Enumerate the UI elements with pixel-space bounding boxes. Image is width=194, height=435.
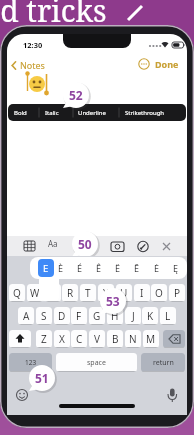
staticText: P [174,286,181,300]
button[interactable]: N [125,330,141,348]
staticText: Aa [48,238,58,249]
staticText: O [155,286,163,300]
button[interactable]: Ē [128,258,146,277]
button[interactable]: Y [98,284,114,302]
staticText: 50 [78,236,92,252]
button[interactable]: 123 [9,353,52,372]
staticText: Z [41,332,47,346]
staticText: 123 [25,358,37,367]
button[interactable]: X [54,330,70,348]
button[interactable]: Ë [109,258,127,277]
button[interactable]: Done [155,58,179,70]
button[interactable]: 53 [97,285,129,317]
button[interactable]: Underline [73,104,118,121]
staticText: B [112,332,119,346]
button[interactable]: Ê [90,258,108,277]
staticText: Done [155,58,179,70]
button[interactable]: C [71,330,87,348]
staticText: Underline [78,109,106,117]
staticText: H [111,309,119,323]
staticText: 53 [106,293,120,309]
button[interactable]: Z [36,330,52,348]
staticText: Ė [154,262,160,274]
staticText: Strikethrough [125,109,165,117]
staticText: Bold [14,109,27,117]
button[interactable]: D [54,307,70,325]
staticText: C [76,332,83,346]
button[interactable]: S [36,307,52,325]
button[interactable]: O [151,284,167,302]
staticText: M [146,332,156,346]
staticText: É [77,262,83,274]
button[interactable]: H [107,307,123,325]
button[interactable]: K [142,307,158,325]
staticText: G [93,309,101,323]
button[interactable]: J [125,307,141,325]
staticText: 52 [69,87,83,103]
staticText: I [140,286,144,300]
button[interactable]: B [107,330,123,348]
staticText: N [129,332,137,346]
staticText: S [41,309,47,323]
button[interactable]: P [169,284,185,302]
button[interactable]: R [62,284,78,302]
staticText: J [132,309,135,323]
staticText: V [94,332,100,346]
button[interactable]: 51 [26,362,58,394]
staticText: D [58,309,66,323]
button[interactable]: 50 [69,228,101,260]
staticText: 12:30 [23,40,43,50]
staticText: Ê [96,262,102,274]
staticText: Ē [134,262,140,274]
button[interactable]: M [143,330,159,348]
staticText: A [23,309,30,323]
staticText: Ę [173,262,179,274]
button[interactable]: Notes [11,59,45,71]
button[interactable]: Strikethrough [118,104,186,121]
staticText: L [165,309,171,323]
staticText: return [153,358,174,368]
button[interactable]: V [89,330,105,348]
button[interactable]: I [134,284,150,302]
button[interactable]: F [71,307,87,325]
button[interactable]: Ė [148,258,166,277]
button[interactable] [9,330,31,348]
button[interactable]: Italic [39,104,73,121]
staticText: R [67,286,74,300]
button[interactable]: U [116,284,132,302]
button[interactable]: T [80,284,96,302]
button[interactable]: space [56,353,137,372]
button[interactable]: E [38,259,54,277]
staticText: U [120,286,128,300]
button[interactable] [45,284,61,302]
staticText: Y [103,286,109,300]
button[interactable]: É [71,258,89,277]
staticText: space [87,358,106,368]
staticText: Q [13,286,21,300]
staticText: E [43,262,49,275]
button[interactable]: G [89,307,105,325]
button[interactable]: Q [9,284,25,302]
staticText: È [58,262,64,274]
button[interactable]: A [18,307,34,325]
button[interactable] [138,58,150,70]
button[interactable]: 52 [60,79,92,111]
staticText: Ë [115,262,121,274]
staticText: rd tricks [0,0,107,31]
button[interactable]: È [52,258,70,277]
staticText: X [59,332,65,346]
staticText: K [147,309,154,323]
staticText: F [76,309,82,323]
staticText: Italic [45,109,59,117]
staticText: Notes [20,59,45,71]
staticText: W [30,286,40,300]
button[interactable]: return [141,353,185,372]
button[interactable] [163,330,185,348]
button[interactable]: Ę [167,258,185,277]
button[interactable]: L [160,307,176,325]
button[interactable]: Aa [48,238,58,249]
staticText: T [85,286,91,300]
button[interactable]: W [27,284,43,302]
staticText: 51 [35,370,49,386]
button[interactable]: Bold [8,104,39,121]
